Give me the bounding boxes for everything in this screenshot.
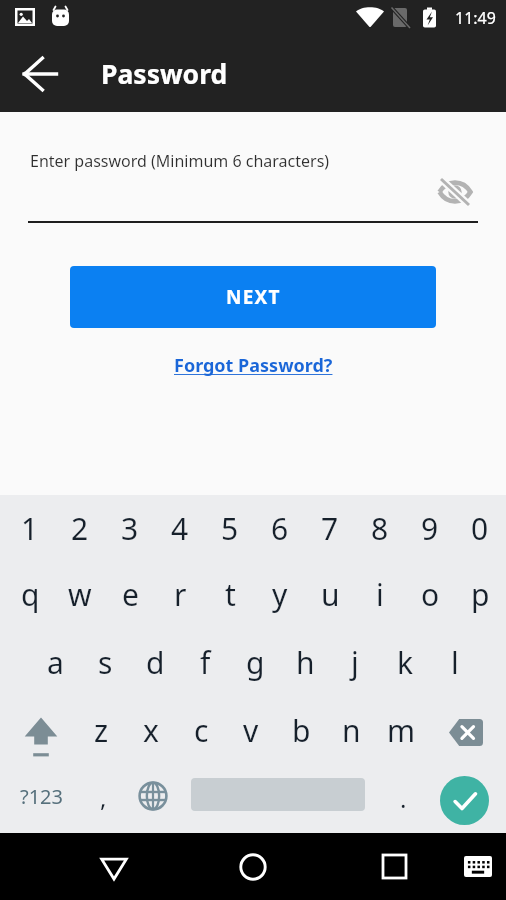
staticText: y bbox=[272, 574, 288, 615]
button[interactable]: Shift bbox=[0, 700, 76, 768]
button[interactable]: f bbox=[180, 632, 230, 700]
button[interactable]: Keyboard bbox=[454, 833, 502, 900]
button[interactable]: Back bbox=[16, 50, 64, 98]
button[interactable]: Enter bbox=[423, 768, 506, 833]
button[interactable]: Backspace bbox=[426, 700, 506, 768]
button[interactable]: Change language bbox=[127, 768, 180, 833]
staticText: o bbox=[421, 574, 440, 615]
staticText: v bbox=[243, 710, 259, 751]
button[interactable]: r bbox=[155, 564, 205, 632]
staticText: 5 bbox=[221, 508, 239, 549]
staticText: q bbox=[21, 574, 40, 615]
button[interactable]: 5 bbox=[205, 495, 255, 564]
staticText: h bbox=[296, 642, 315, 683]
button[interactable]: 0 bbox=[455, 495, 505, 564]
button[interactable]: Toggle password visibility bbox=[434, 171, 476, 213]
button[interactable]: 1 bbox=[5, 495, 55, 564]
button[interactable]: q bbox=[5, 564, 55, 632]
button[interactable]: v bbox=[226, 700, 276, 768]
staticText: z bbox=[94, 710, 109, 751]
button[interactable]: s bbox=[80, 632, 130, 700]
button[interactable]: n bbox=[326, 700, 376, 768]
button[interactable]: 7 bbox=[305, 495, 355, 564]
button[interactable]: c bbox=[176, 700, 226, 768]
staticText: m bbox=[387, 710, 416, 751]
staticText: g bbox=[246, 642, 265, 683]
button[interactable]: m bbox=[376, 700, 426, 768]
button[interactable]: Recents bbox=[370, 833, 418, 900]
staticText: e bbox=[122, 574, 139, 615]
staticText: 11:49 bbox=[455, 7, 496, 29]
staticText: 8 bbox=[371, 508, 389, 549]
staticText: c bbox=[194, 710, 209, 751]
staticText: f bbox=[200, 642, 211, 683]
staticText: 1 bbox=[21, 508, 39, 549]
staticText: s bbox=[98, 642, 113, 683]
button[interactable]: . bbox=[376, 768, 423, 833]
button[interactable]: p bbox=[455, 564, 505, 632]
staticText: j bbox=[351, 642, 359, 683]
button[interactable]: 9 bbox=[405, 495, 455, 564]
button[interactable]: 8 bbox=[355, 495, 405, 564]
staticText: k bbox=[397, 642, 414, 683]
staticText: u bbox=[321, 574, 340, 615]
staticText: w bbox=[68, 574, 92, 615]
button[interactable]: i bbox=[355, 564, 405, 632]
staticText: Enter password (Minimum 6 characters) bbox=[30, 150, 330, 172]
staticText: 3 bbox=[121, 508, 139, 549]
staticText: i bbox=[376, 574, 384, 615]
button[interactable]: y bbox=[255, 564, 305, 632]
staticText: n bbox=[342, 710, 361, 751]
staticText: 9 bbox=[421, 508, 439, 549]
staticText: b bbox=[292, 710, 311, 751]
staticText: d bbox=[146, 642, 165, 683]
button[interactable]: k bbox=[380, 632, 430, 700]
button[interactable]: u bbox=[305, 564, 355, 632]
staticText: 0 bbox=[471, 508, 489, 549]
button[interactable]: Back bbox=[90, 833, 138, 900]
staticText: . bbox=[400, 782, 407, 815]
button[interactable]: o bbox=[405, 564, 455, 632]
button[interactable]: , bbox=[76, 768, 127, 833]
staticText: , bbox=[100, 781, 107, 814]
button[interactable]: t bbox=[205, 564, 255, 632]
staticText: t bbox=[225, 574, 236, 615]
staticText: 6 bbox=[271, 508, 289, 549]
button[interactable]: b bbox=[276, 700, 326, 768]
staticText: l bbox=[451, 642, 459, 683]
staticText: p bbox=[471, 574, 490, 615]
staticText: r bbox=[174, 574, 187, 615]
staticText: Forgot Password? bbox=[174, 353, 333, 378]
button[interactable]: 2 bbox=[55, 495, 105, 564]
button[interactable]: w bbox=[55, 564, 105, 632]
button[interactable]: ?123 bbox=[0, 768, 76, 833]
button[interactable]: 6 bbox=[255, 495, 305, 564]
button[interactable]: e bbox=[105, 564, 155, 632]
button[interactable] bbox=[180, 768, 376, 833]
staticText: a bbox=[47, 642, 64, 683]
staticText: 7 bbox=[321, 508, 339, 549]
button[interactable]: NEXT bbox=[70, 266, 436, 328]
staticText: NEXT bbox=[226, 284, 281, 310]
button[interactable]: x bbox=[126, 700, 176, 768]
button[interactable]: h bbox=[280, 632, 330, 700]
button[interactable]: j bbox=[330, 632, 380, 700]
staticText: 4 bbox=[171, 508, 189, 549]
button[interactable]: z bbox=[76, 700, 126, 768]
button[interactable]: a bbox=[30, 632, 80, 700]
button[interactable]: g bbox=[230, 632, 280, 700]
staticText: x bbox=[143, 710, 159, 751]
staticText: Password bbox=[101, 56, 228, 92]
staticText: ?123 bbox=[20, 783, 63, 810]
button[interactable]: d bbox=[130, 632, 180, 700]
button[interactable]: l bbox=[430, 632, 480, 700]
button[interactable]: Forgot Password? bbox=[170, 349, 337, 382]
button[interactable]: 4 bbox=[155, 495, 205, 564]
button[interactable]: Home bbox=[229, 833, 277, 900]
button[interactable]: 3 bbox=[105, 495, 155, 564]
staticText: 2 bbox=[71, 508, 89, 549]
